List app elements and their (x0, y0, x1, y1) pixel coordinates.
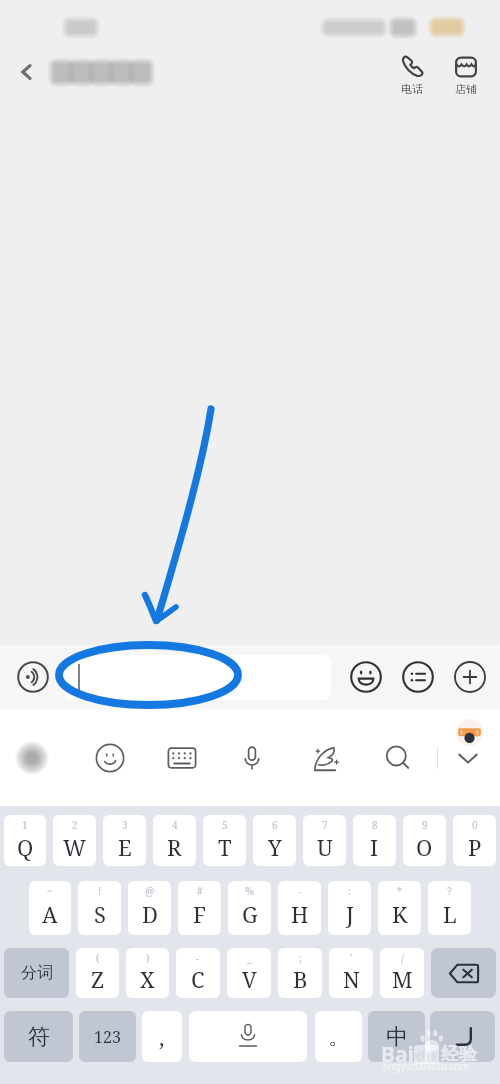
staticText: Y (268, 832, 282, 862)
staticText: Bai (381, 1040, 414, 1069)
button[interactable]: 符 (4, 1011, 73, 1062)
staticText: # (197, 884, 203, 898)
staticText: T (218, 832, 232, 862)
button[interactable]: Settings (15, 741, 49, 775)
staticText: U (317, 832, 333, 862)
button[interactable]: 6 (253, 815, 296, 866)
button[interactable]: Backspace (431, 948, 496, 998)
staticText: Z (91, 964, 105, 994)
button[interactable]: 1 (4, 815, 46, 866)
button[interactable]: ; (278, 948, 322, 998)
button[interactable]: 7 (303, 815, 346, 866)
button[interactable]: 2 (53, 815, 96, 866)
staticText: B (293, 964, 308, 994)
button[interactable]: _ (227, 948, 271, 998)
staticText: O (416, 832, 433, 862)
button[interactable]: 。 (315, 1011, 362, 1062)
button[interactable]: Search (381, 741, 415, 775)
button[interactable]: - (176, 948, 220, 998)
staticText: - (298, 884, 302, 898)
button[interactable]: ! (78, 881, 121, 935)
staticText: R (167, 832, 182, 862)
staticText: 7 (322, 818, 328, 832)
staticText: 0 (472, 818, 478, 832)
staticText: - (196, 951, 200, 965)
button[interactable]: 分词 (4, 948, 69, 998)
button[interactable]: : (328, 881, 371, 935)
staticText: * (397, 884, 402, 898)
button[interactable]: Enter (430, 1011, 495, 1062)
staticText: H (291, 899, 309, 929)
staticText: ) (146, 951, 150, 965)
staticText: 店铺 (455, 82, 477, 96)
button[interactable]: Voice input (235, 741, 269, 775)
staticText: L (443, 899, 457, 929)
staticText: 经验 (441, 1043, 477, 1066)
staticText: I (370, 832, 379, 862)
staticText: : (348, 884, 351, 898)
button[interactable] (64, 655, 331, 700)
staticText: G (242, 899, 258, 929)
button[interactable]: ' (329, 948, 373, 998)
button[interactable]: - (278, 881, 321, 935)
staticText: ~ (47, 884, 53, 898)
button[interactable]: Voice (17, 661, 49, 693)
button[interactable]: 电话 (388, 50, 436, 96)
staticText: J (346, 899, 354, 929)
button[interactable]: 店铺 (442, 50, 490, 96)
staticText: jingyan.baidu.com (383, 1059, 470, 1073)
staticText: E (118, 832, 132, 862)
button[interactable]: / (380, 948, 424, 998)
staticText: 1 (22, 818, 28, 832)
button[interactable]: # (178, 881, 221, 935)
staticText: , (159, 1022, 165, 1052)
button[interactable]: 123 (79, 1011, 136, 1062)
staticText: @ (145, 884, 155, 898)
staticText: 123 (94, 1026, 121, 1048)
button[interactable]: Emoticon (93, 741, 127, 775)
staticText: du (416, 1045, 437, 1064)
staticText: _ (247, 951, 252, 965)
staticText: P (468, 832, 482, 862)
button[interactable]: Space (189, 1011, 307, 1062)
staticText: ? (447, 884, 452, 898)
button[interactable]: Back (12, 56, 42, 88)
button[interactable]: Emoji (350, 661, 382, 693)
staticText: A (42, 899, 58, 929)
button[interactable]: 3 (103, 815, 146, 866)
button[interactable]: 0 (453, 815, 496, 866)
button[interactable]: * (378, 881, 421, 935)
button[interactable]: % (228, 881, 271, 935)
staticText: C (191, 964, 205, 994)
button[interactable]: , (142, 1011, 182, 1062)
staticText: F (193, 899, 206, 929)
button[interactable]: 9 (403, 815, 446, 866)
staticText: M (392, 964, 413, 994)
staticText: / (401, 951, 404, 965)
staticText: % (245, 884, 254, 898)
button[interactable]: 5 (203, 815, 246, 866)
staticText: 3 (122, 818, 128, 832)
button[interactable]: Handwriting (308, 741, 342, 775)
button[interactable]: ~ (29, 881, 71, 935)
staticText: 符 (28, 1023, 50, 1051)
button[interactable]: Keyboard (165, 741, 199, 775)
button[interactable]: More options (402, 661, 434, 693)
button[interactable]: @ (128, 881, 171, 935)
button[interactable]: Add (454, 661, 486, 693)
button[interactable]: ? (428, 881, 471, 935)
button[interactable]: 中 (368, 1011, 425, 1062)
staticText: 2 (72, 818, 78, 832)
staticText: ' (350, 951, 353, 965)
button[interactable]: 4 (153, 815, 196, 866)
button[interactable]: ( (76, 948, 119, 998)
button[interactable]: ) (126, 948, 169, 998)
staticText: X (140, 964, 155, 994)
button[interactable]: Hide keyboard (451, 741, 485, 775)
staticText: 9 (422, 818, 428, 832)
staticText: 分词 (21, 963, 53, 983)
staticText: W (63, 832, 87, 862)
staticText: ! (98, 884, 102, 898)
staticText: V (242, 964, 257, 994)
button[interactable]: 8 (353, 815, 396, 866)
